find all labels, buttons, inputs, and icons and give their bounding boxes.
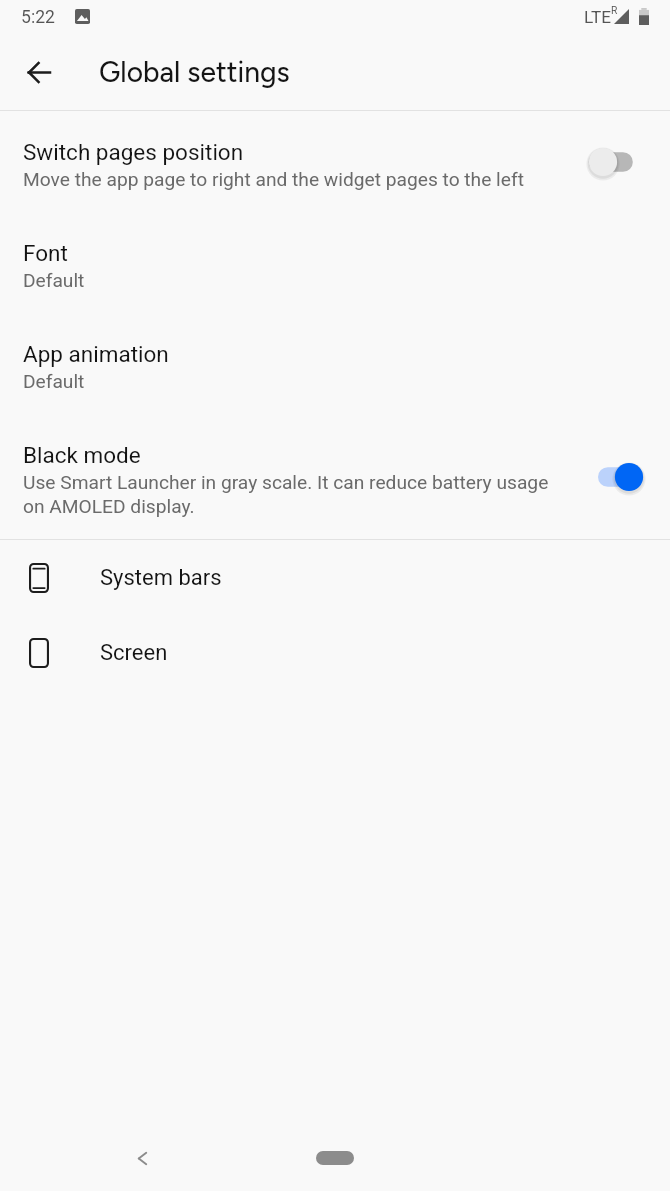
staticText: Global settings (99, 55, 290, 89)
button[interactable]: On (580, 449, 670, 505)
button[interactable]: Back (14, 48, 63, 97)
button[interactable]: Font (0, 212, 670, 313)
button[interactable]: Home (316, 1151, 354, 1165)
staticText: Default (23, 268, 85, 292)
staticText: Default (23, 369, 85, 393)
staticText: Switch pages position (23, 139, 244, 165)
button[interactable]: App animation (0, 313, 670, 414)
staticText: Screen (100, 640, 168, 666)
button[interactable]: Back (122, 1138, 162, 1178)
button[interactable]: Black mode (0, 414, 670, 539)
button[interactable]: Switch pages position (0, 111, 670, 212)
staticText: Font (23, 240, 68, 266)
staticText: Black mode (23, 442, 141, 468)
staticText: System bars (100, 565, 222, 591)
staticText: 5:22 (21, 7, 55, 28)
staticText: R (611, 4, 618, 16)
staticText: LTE (584, 7, 611, 27)
staticText: App animation (23, 341, 169, 367)
staticText: Use Smart Launcher in gray scale. It can… (23, 470, 550, 518)
button[interactable]: Off (580, 134, 670, 190)
staticText: Move the app page to right and the widge… (23, 167, 524, 191)
button[interactable]: Screen (0, 615, 670, 690)
button[interactable]: System bars (0, 540, 670, 615)
